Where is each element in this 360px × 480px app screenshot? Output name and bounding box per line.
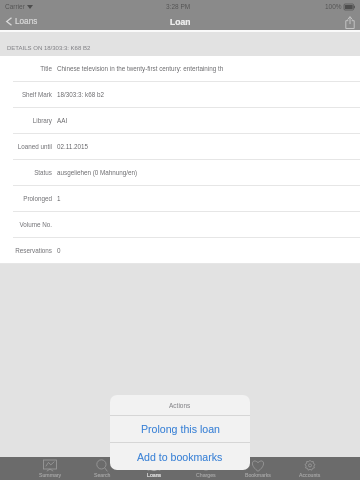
- staticText: 3:28 PM: [166, 3, 191, 10]
- staticText: Loan: [170, 17, 191, 27]
- staticText: Loans: [15, 17, 38, 26]
- staticText: Chinese television in the twenty-first c…: [57, 65, 224, 72]
- staticText: Reservations: [15, 247, 52, 254]
- staticText: Status: [34, 169, 52, 176]
- staticText: Search: [94, 472, 111, 478]
- staticText: Charges: [196, 472, 216, 478]
- button[interactable]: Add to bookmarks: [110, 443, 250, 470]
- staticText: 02.11.2015: [57, 143, 89, 150]
- button[interactable]: Summary: [24, 457, 76, 480]
- button[interactable]: Status: [0, 160, 360, 185]
- staticText: Prolong this loan: [141, 423, 220, 435]
- staticText: Bookmarks: [245, 472, 271, 478]
- staticText: Carrier: [5, 3, 25, 10]
- staticText: 18/303:3: k68 b2: [57, 91, 104, 98]
- staticText: DETAILS ON 18/303:3: K68 B2: [7, 45, 91, 52]
- button[interactable]: Search: [76, 457, 128, 480]
- button[interactable]: Charges: [180, 457, 232, 480]
- staticText: Prolonged: [23, 195, 52, 202]
- button[interactable]: Library: [0, 108, 360, 133]
- button[interactable]: Bookmarks: [232, 457, 284, 480]
- staticText: AAI: [57, 117, 68, 124]
- staticText: Summary: [39, 472, 62, 478]
- staticText: Loans: [147, 472, 162, 478]
- button[interactable]: Share: [340, 14, 360, 30]
- button[interactable]: Prolonged: [0, 186, 360, 211]
- button[interactable]: Accounts: [284, 457, 336, 480]
- staticText: 100%: [325, 3, 342, 10]
- button[interactable]: Prolong this loan: [110, 416, 250, 442]
- staticText: Accounts: [299, 472, 321, 478]
- button[interactable]: Title: [0, 56, 360, 81]
- staticText: Shelf Mark: [21, 91, 52, 98]
- staticText: Volume No.: [19, 221, 52, 228]
- staticText: 0: [57, 247, 61, 254]
- button[interactable]: Loans: [128, 457, 180, 480]
- button[interactable]: Shelf Mark: [0, 82, 360, 107]
- staticText: ausgeliehen (0 Mahnung/en): [57, 169, 138, 176]
- staticText: Title: [40, 65, 52, 72]
- staticText: 1: [57, 195, 61, 202]
- button[interactable]: Loans: [0, 15, 44, 28]
- button[interactable]: Volume No.: [0, 212, 360, 237]
- button[interactable]: Loaned until: [0, 134, 360, 159]
- button[interactable]: Reservations: [0, 238, 360, 263]
- staticText: Library: [32, 117, 52, 124]
- staticText: Add to bookmarks: [137, 451, 223, 463]
- staticText: Actions: [169, 402, 191, 409]
- staticText: Loaned until: [17, 143, 52, 150]
